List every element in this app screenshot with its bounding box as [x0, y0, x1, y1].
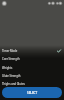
- staticText: SELECT: [27, 91, 38, 95]
- staticText: Timer Mode: [2, 49, 18, 53]
- button[interactable]: Core Strength: [0, 55, 64, 63]
- button[interactable]: Glute Strength: [0, 72, 64, 80]
- staticText: Core Strength: [2, 57, 20, 61]
- staticText: Glute Strength: [2, 74, 21, 78]
- other: Clock 9:41: [2, 1, 7, 6]
- staticText: Weights: [2, 66, 13, 70]
- button[interactable]: Weights: [0, 64, 64, 72]
- button[interactable]: SELECT: [2, 87, 62, 98]
- button[interactable]: Timer Mode: [0, 47, 64, 55]
- staticText: Thighs and Glutes: [2, 82, 25, 86]
- other: Status icons: [48, 1, 62, 6]
- button[interactable]: Thighs and Glutes: [0, 80, 64, 88]
